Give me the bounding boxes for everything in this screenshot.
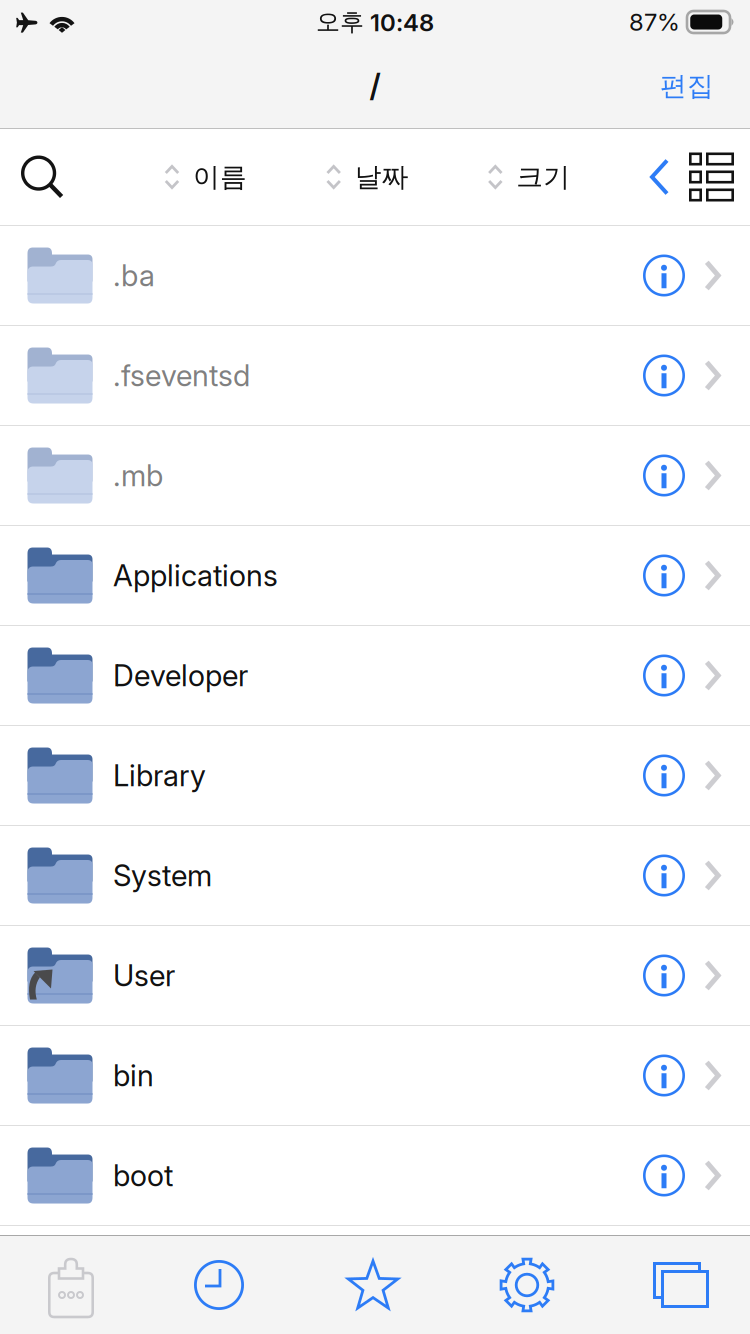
- staticText: System: [113, 858, 212, 893]
- button[interactable]: Recents: [142, 1260, 296, 1310]
- button[interactable]: Settings: [450, 1258, 604, 1312]
- button[interactable]: Info: [643, 854, 685, 896]
- button[interactable]: Change view: [689, 152, 734, 201]
- staticText: 편집: [660, 69, 714, 103]
- staticText: Applications: [113, 558, 278, 593]
- button[interactable]: 날짜: [326, 160, 409, 194]
- button[interactable]: Info: [643, 554, 685, 596]
- staticText: boot: [113, 1158, 173, 1193]
- button[interactable]: 편집: [638, 57, 714, 115]
- button[interactable]: Clipboard: [0, 1251, 142, 1319]
- button[interactable]: .ba: [0, 226, 750, 326]
- staticText: 이름: [193, 160, 247, 194]
- button[interactable]: Info: [643, 254, 685, 296]
- staticText: User: [113, 958, 175, 993]
- button[interactable]: Info: [643, 1154, 685, 1196]
- staticText: bin: [113, 1058, 154, 1093]
- staticText: Developer: [113, 658, 248, 693]
- button[interactable]: Info: [643, 954, 685, 996]
- button[interactable]: Favorites: [296, 1258, 450, 1312]
- staticText: .fseventsd: [113, 358, 250, 393]
- button[interactable]: System: [0, 826, 750, 926]
- staticText: .ba: [113, 258, 155, 293]
- button[interactable]: boot: [0, 1126, 750, 1226]
- button[interactable]: 크기: [487, 160, 570, 194]
- staticText: /: [369, 67, 380, 104]
- staticText: 87%: [629, 7, 680, 36]
- button[interactable]: Info: [643, 1054, 685, 1096]
- staticText: 오후 10:48: [316, 7, 434, 37]
- button[interactable]: Tabs: [604, 1262, 750, 1308]
- button[interactable]: Library: [0, 726, 750, 826]
- button[interactable]: Info: [643, 754, 685, 796]
- button[interactable]: Applications: [0, 526, 750, 626]
- button[interactable]: Back: [649, 158, 670, 196]
- button[interactable]: .mb: [0, 426, 750, 526]
- button[interactable]: Search: [21, 155, 64, 198]
- button[interactable]: Info: [643, 454, 685, 496]
- button[interactable]: Info: [643, 654, 685, 696]
- staticText: 날짜: [355, 160, 409, 194]
- staticText: 크기: [516, 160, 570, 194]
- button[interactable]: bin: [0, 1026, 750, 1126]
- button[interactable]: Developer: [0, 626, 750, 726]
- button[interactable]: .fseventsd: [0, 326, 750, 426]
- button[interactable]: 이름: [164, 160, 247, 194]
- button[interactable]: User: [0, 926, 750, 1026]
- staticText: .mb: [113, 458, 163, 493]
- staticText: Library: [113, 758, 206, 793]
- button[interactable]: Info: [643, 354, 685, 396]
